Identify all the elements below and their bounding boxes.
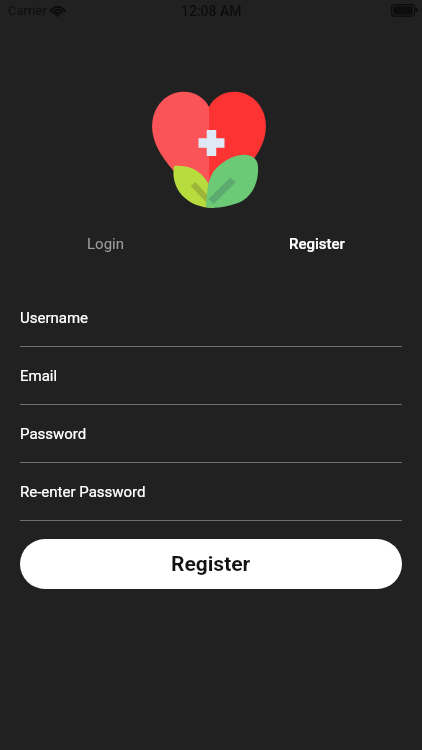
button[interactable]: Login <box>0 226 211 262</box>
staticText: Carrier <box>8 3 47 18</box>
button[interactable]: Password <box>20 425 87 443</box>
staticText: Email <box>20 367 58 385</box>
staticText: Register <box>289 235 345 253</box>
button[interactable]: Username <box>20 309 89 327</box>
staticText: Login <box>87 235 124 253</box>
staticText: Password <box>20 425 87 443</box>
button[interactable]: Register <box>20 539 402 589</box>
button[interactable]: Email <box>20 367 58 385</box>
button[interactable]: Register <box>211 226 422 262</box>
staticText: Register <box>171 552 251 577</box>
staticText: Re-enter Password <box>20 483 146 501</box>
button[interactable]: Re-enter Password <box>20 483 146 501</box>
staticText: Username <box>20 309 89 327</box>
staticText: 12:08 AM <box>181 3 242 19</box>
